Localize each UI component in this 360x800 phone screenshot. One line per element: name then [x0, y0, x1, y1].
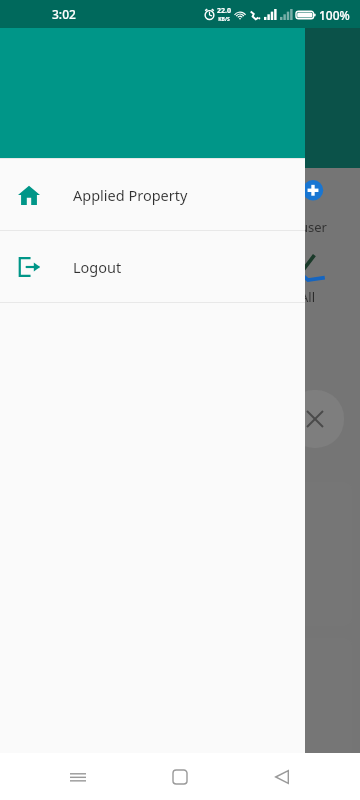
- staticText: KB/S: [218, 16, 230, 23]
- button[interactable]: Back: [258, 753, 306, 800]
- staticText: Logout: [73, 257, 122, 277]
- staticText: 100%: [319, 7, 350, 23]
- button[interactable]: Recent apps: [54, 753, 102, 800]
- staticText: 3:02: [52, 6, 76, 22]
- staticText: user: [300, 218, 327, 236]
- button[interactable]: Applied Property: [0, 159, 305, 230]
- staticText: All: [300, 288, 316, 306]
- staticText: 22.0: [217, 6, 231, 16]
- button[interactable]: Close: [286, 390, 344, 448]
- button[interactable]: Home: [156, 753, 204, 800]
- button[interactable]: Logout: [0, 231, 305, 302]
- staticText: Applied Property: [73, 185, 188, 205]
